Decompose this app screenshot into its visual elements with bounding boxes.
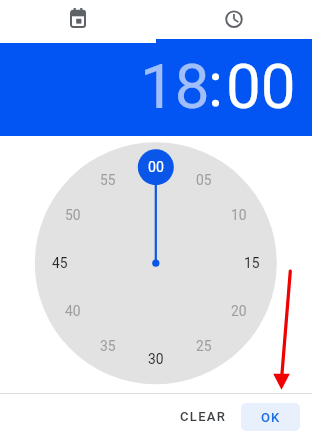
staticText: 25 — [196, 338, 212, 354]
button[interactable]: 25 — [187, 337, 221, 355]
staticText: 10 — [231, 207, 247, 223]
staticText: 35 — [100, 338, 116, 354]
staticText: 30 — [148, 351, 164, 367]
button[interactable]: 00 — [226, 50, 296, 123]
staticText: OK — [261, 410, 281, 425]
staticText: 20 — [231, 303, 247, 319]
staticText: 45 — [52, 255, 68, 271]
button[interactable]: 50 — [56, 206, 90, 224]
staticText: 40 — [65, 303, 81, 319]
staticText: 15 — [244, 255, 260, 271]
staticText: 50 — [65, 207, 81, 223]
button[interactable]: 00 — [138, 149, 174, 185]
button[interactable]: 10 — [222, 206, 256, 224]
button[interactable]: 30 — [139, 350, 173, 368]
button[interactable] — [156, 0, 312, 39]
button[interactable]: CLEAR — [171, 401, 235, 431]
staticText: : — [208, 48, 224, 121]
button[interactable]: OK — [241, 403, 300, 431]
button[interactable]: 45 — [43, 254, 77, 272]
button[interactable] — [0, 0, 156, 39]
button[interactable]: 15 — [235, 254, 269, 272]
button[interactable]: 20 — [222, 302, 256, 320]
button[interactable]: 05 — [187, 171, 221, 189]
button[interactable]: 40 — [56, 302, 90, 320]
staticText: 00 — [148, 159, 164, 176]
staticText: 55 — [100, 172, 116, 188]
button[interactable]: 35 — [91, 337, 125, 355]
staticText: CLEAR — [180, 409, 227, 424]
button[interactable]: 55 — [91, 171, 125, 189]
staticText: 05 — [196, 172, 212, 188]
button[interactable]: 18 — [140, 50, 210, 123]
